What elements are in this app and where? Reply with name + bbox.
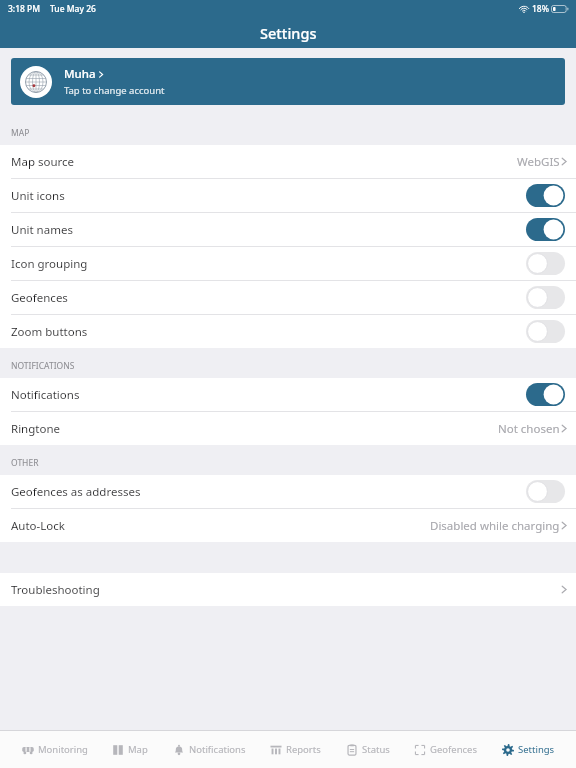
staticText: OTHER (11, 457, 39, 469)
button[interactable]: Ringtone (0, 412, 576, 445)
button[interactable]: Monitoring (19, 737, 91, 762)
button[interactable]: Notifications (170, 737, 249, 762)
staticText: Settings (260, 23, 317, 43)
staticText: NOTIFICATIONS (11, 360, 75, 372)
staticText: Settings (518, 743, 555, 756)
button[interactable]: Map (109, 737, 151, 762)
staticText: WebGIS (517, 154, 560, 170)
staticText: Reports (286, 743, 321, 756)
staticText: Disabled while charging (430, 518, 560, 534)
button[interactable]: Status (343, 737, 393, 762)
staticText: Not chosen (498, 421, 560, 437)
button[interactable]: Geofences (0, 281, 576, 314)
button[interactable]: Settings (499, 737, 558, 762)
button[interactable]: Muha (11, 58, 565, 105)
staticText: Status (362, 743, 390, 756)
staticText: Geofences (11, 290, 526, 306)
staticText: Geofences (430, 743, 477, 756)
button[interactable]: Map source (0, 145, 576, 178)
staticText: Map (128, 743, 148, 756)
staticText: Tap to change account (64, 84, 165, 97)
button[interactable]: Auto-Lock (0, 509, 576, 542)
staticText: Icon grouping (11, 256, 526, 272)
staticText: 18% (532, 3, 549, 15)
button[interactable]: Reports (267, 737, 324, 762)
staticText: 3:18 PM (8, 3, 41, 15)
button[interactable]: Unit icons (0, 179, 576, 212)
button[interactable]: Troubleshooting (0, 573, 576, 606)
button[interactable]: Zoom buttons (0, 315, 576, 348)
staticText: Tue May 26 (50, 3, 96, 15)
staticText: Unit names (11, 222, 526, 238)
staticText: Unit icons (11, 188, 526, 204)
staticText: Monitoring (38, 743, 88, 756)
button[interactable]: Geofences (411, 737, 480, 762)
staticText: Map source (11, 154, 517, 170)
staticText: Troubleshooting (11, 582, 560, 598)
staticText: Notifications (189, 743, 246, 756)
staticText: Geofences as addresses (11, 484, 526, 500)
staticText: MAP (11, 127, 30, 139)
button[interactable]: Unit names (0, 213, 576, 246)
staticText: Notifications (11, 387, 526, 403)
staticText: Auto-Lock (11, 518, 430, 534)
staticText: Zoom buttons (11, 324, 526, 340)
staticText: Muha (64, 66, 96, 82)
staticText: Ringtone (11, 421, 498, 437)
button[interactable]: Notifications (0, 378, 576, 411)
button[interactable]: Icon grouping (0, 247, 576, 280)
button[interactable]: Geofences as addresses (0, 475, 576, 508)
